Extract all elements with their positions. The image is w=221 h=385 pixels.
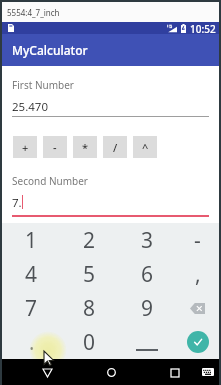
button[interactable]: Backspace [176, 291, 219, 325]
staticText: / [113, 140, 118, 155]
button[interactable]: / [103, 136, 127, 158]
staticText: 25.470 [12, 99, 48, 115]
button[interactable]: . [2, 325, 61, 359]
staticText: 9 [141, 294, 154, 323]
button[interactable]: 9 [118, 291, 176, 325]
staticText: . [29, 328, 35, 357]
button[interactable]: 6 [118, 257, 176, 291]
button[interactable]: 5 [61, 257, 118, 291]
staticText: 7. [12, 195, 22, 211]
button[interactable]: + [13, 136, 37, 158]
button[interactable]: 3 [118, 223, 176, 257]
staticText: 6 [141, 260, 154, 289]
button[interactable]: Recent apps [162, 360, 187, 385]
staticText: 2 [83, 226, 96, 255]
staticText: 3 [141, 226, 154, 255]
staticText: ^ [142, 140, 149, 155]
staticText: MyCalculator [12, 42, 88, 58]
button[interactable] [118, 325, 176, 359]
staticText: 4 [25, 260, 38, 289]
button[interactable]: 8 [61, 291, 118, 325]
button[interactable]: 0 [61, 325, 118, 359]
staticText: - [194, 226, 201, 255]
other: Backspace [190, 303, 205, 314]
button[interactable]: Back [35, 360, 60, 385]
button[interactable]: 4 [2, 257, 61, 291]
staticText: First Number [12, 78, 74, 92]
staticText: 10:52 [190, 22, 216, 34]
staticText: 5 [83, 260, 96, 289]
button[interactable]: ^ [133, 136, 157, 158]
button[interactable]: , [176, 257, 219, 291]
staticText: - [53, 140, 57, 155]
staticText: 0 [83, 328, 96, 357]
staticText: 7 [25, 294, 38, 323]
staticText: * [82, 140, 89, 155]
button[interactable]: - [43, 136, 67, 158]
staticText: + [22, 140, 29, 155]
button[interactable]: 2 [61, 223, 118, 257]
button[interactable]: 1 [2, 223, 61, 257]
button[interactable]: Done [187, 331, 209, 353]
button[interactable]: 7 [2, 291, 61, 325]
staticText: , [195, 260, 201, 289]
staticText: 5554:4_7_inch [7, 7, 60, 18]
staticText: Second Number [12, 174, 88, 188]
button[interactable]: Show keyboard [198, 362, 218, 382]
button[interactable]: Done [176, 325, 219, 359]
staticText: 1 [25, 226, 38, 255]
button[interactable]: Home [99, 360, 124, 385]
button[interactable]: - [176, 223, 219, 257]
staticText: 8 [83, 294, 96, 323]
button[interactable]: * [73, 136, 97, 158]
